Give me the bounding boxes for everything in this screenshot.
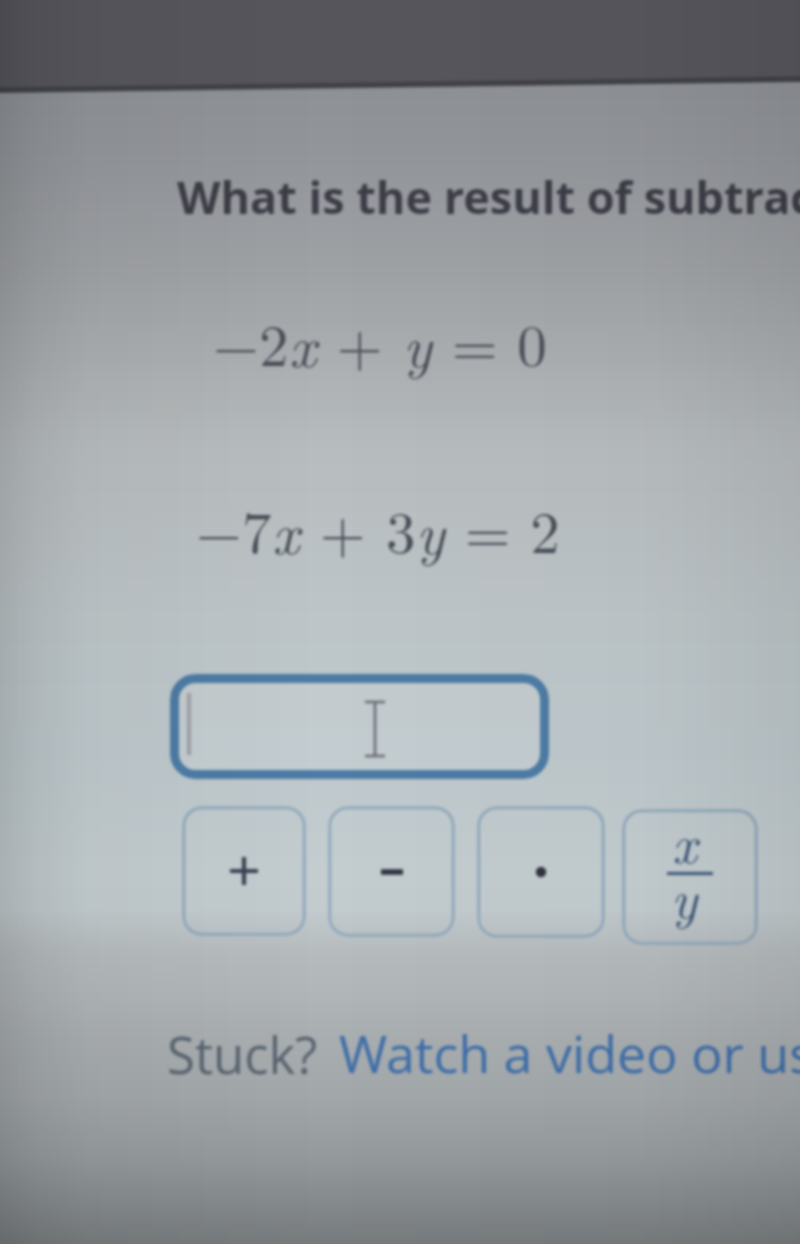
button[interactable]: Plus	[182, 806, 306, 936]
button[interactable]: Minus	[328, 806, 455, 937]
staticText: −2	[213, 300, 289, 384]
staticText: x	[272, 488, 300, 571]
staticText: Stuck?	[167, 1019, 318, 1088]
staticText: = 0	[432, 300, 547, 384]
staticText: +	[300, 487, 386, 571]
staticText: y	[416, 488, 445, 571]
button[interactable]: Answer input	[170, 674, 549, 779]
staticText: −7	[196, 487, 272, 571]
button[interactable]: Multiply	[477, 806, 605, 938]
staticText: +	[317, 300, 403, 384]
staticText: y	[403, 301, 432, 384]
button[interactable]: Watch a video or us	[339, 1017, 800, 1088]
staticText: x	[289, 301, 317, 384]
staticText: = 2	[445, 487, 560, 571]
staticText: y	[671, 857, 698, 933]
button[interactable]: Fraction	[622, 809, 758, 945]
staticText: What is the result of subtrac	[177, 166, 800, 227]
staticText: x	[672, 809, 698, 878]
staticText: 3	[386, 487, 416, 571]
